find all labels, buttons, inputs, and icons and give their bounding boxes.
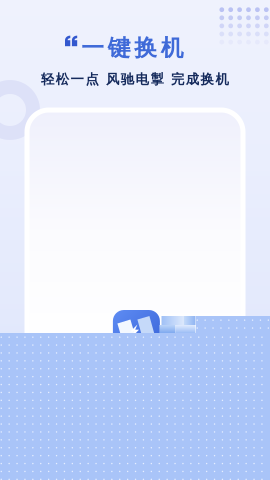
staticText: 一键换机 xyxy=(81,34,184,62)
staticText: 轻松一点 风驰电掣 完成换机 xyxy=(41,71,228,87)
